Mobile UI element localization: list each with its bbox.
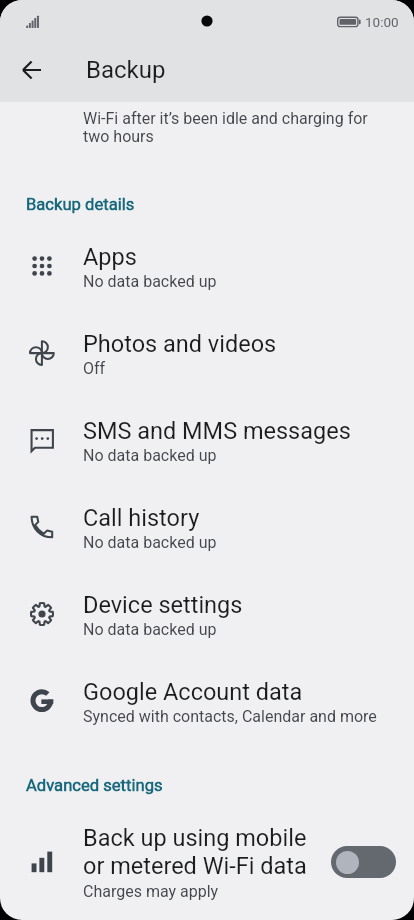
staticText: No data backed up <box>83 446 217 465</box>
staticText: Advanced settings <box>26 776 163 795</box>
staticText: No data backed up <box>83 620 217 639</box>
button[interactable]: Back up using mobile or metered Wi-Fi da… <box>0 805 414 920</box>
staticText: Call history <box>83 504 200 532</box>
button[interactable]: Google Account data <box>0 658 414 745</box>
staticText: Backup details <box>26 195 135 214</box>
staticText: Off <box>83 359 106 378</box>
button[interactable]: Backup details <box>0 189 414 221</box>
button[interactable]: Photos and videos <box>0 310 414 397</box>
button[interactable]: SMS and MMS messages <box>0 397 414 484</box>
button[interactable]: Navigate up <box>8 46 56 94</box>
staticText: SMS and MMS messages <box>83 417 351 445</box>
staticText: Wi-Fi after it’s been idle and charging … <box>83 109 368 145</box>
button[interactable]: Call history <box>0 484 414 571</box>
staticText: 10:00 <box>365 14 399 30</box>
staticText: No data backed up <box>83 272 217 291</box>
staticText: Device settings <box>83 591 243 619</box>
staticText: Back up using mobile or metered Wi-Fi da… <box>83 824 307 880</box>
staticText: Apps <box>83 243 137 271</box>
staticText: Charges may apply <box>83 882 219 901</box>
button[interactable]: Device settings <box>0 571 414 658</box>
staticText: Synced with contacts, Calendar and more <box>83 707 377 726</box>
staticText: No data backed up <box>83 533 217 552</box>
button[interactable]: Back up using mobile or metered Wi-Fi da… <box>331 846 396 878</box>
staticText: Photos and videos <box>83 330 277 358</box>
button[interactable]: Advanced settings <box>0 770 414 802</box>
button[interactable]: Apps <box>0 223 414 310</box>
staticText: Backup <box>86 56 166 84</box>
staticText: Google Account data <box>83 678 303 706</box>
